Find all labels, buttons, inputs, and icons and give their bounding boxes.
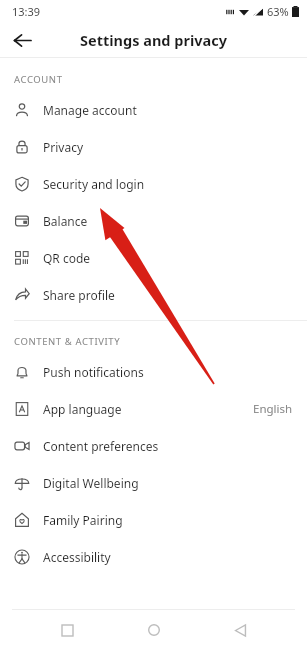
button[interactable]: Back	[220, 610, 260, 650]
button[interactable]: Accessibility	[0, 538, 307, 575]
staticText: 63%	[267, 4, 289, 19]
button[interactable]: QR code	[0, 239, 307, 276]
button[interactable]: Home	[134, 610, 174, 650]
staticText: Balance	[43, 213, 88, 229]
button[interactable]: Recents	[47, 610, 87, 650]
button[interactable]: Push notifications	[0, 353, 307, 390]
button[interactable]: Share profile	[0, 276, 307, 313]
button[interactable]: Content preferences	[0, 427, 307, 464]
staticText: Push notifications	[43, 364, 144, 380]
staticText: Content preferences	[43, 438, 159, 454]
button[interactable]: Security and login	[0, 165, 307, 202]
button[interactable]: Manage account	[0, 91, 307, 128]
staticText: Privacy	[43, 139, 84, 155]
staticText: Settings and privacy	[80, 30, 227, 50]
button[interactable]: Back	[6, 24, 38, 56]
staticText: Digital Wellbeing	[43, 475, 139, 491]
staticText: Security and login	[43, 176, 145, 192]
staticText: ACCOUNT	[14, 73, 63, 86]
staticText: 13:39	[12, 4, 41, 19]
staticText: Manage account	[43, 102, 137, 118]
staticText: English	[253, 401, 293, 417]
staticText: CONTENT & ACTIVITY	[14, 335, 121, 348]
button[interactable]: Family Pairing	[0, 501, 307, 538]
button[interactable]: Digital Wellbeing	[0, 464, 307, 501]
staticText: App language	[43, 401, 122, 417]
button[interactable]: App language	[0, 390, 307, 427]
button[interactable]: Privacy	[0, 128, 307, 165]
staticText: QR code	[43, 250, 91, 266]
button[interactable]: Balance	[0, 202, 307, 239]
staticText: Share profile	[43, 287, 115, 303]
staticText: Family Pairing	[43, 512, 123, 528]
staticText: Accessibility	[43, 549, 111, 565]
